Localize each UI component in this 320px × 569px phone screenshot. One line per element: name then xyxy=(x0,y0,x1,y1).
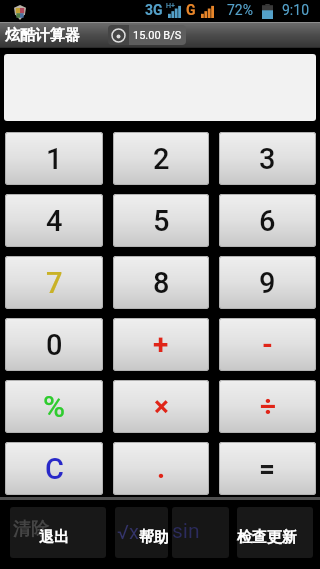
button[interactable]: 0 xyxy=(5,318,103,371)
button[interactable]: 检查更新 xyxy=(234,524,300,550)
staticText: × xyxy=(154,390,169,423)
staticText: 5 xyxy=(153,204,170,238)
staticText: 检查更新 xyxy=(237,528,297,547)
staticText: sin xyxy=(172,519,200,544)
staticText: . xyxy=(157,452,166,485)
staticText: 7 xyxy=(46,266,63,300)
button[interactable]: = xyxy=(219,442,316,495)
staticText: 清除 xyxy=(13,518,49,541)
staticText: 0 xyxy=(46,328,63,362)
button[interactable]: % xyxy=(5,380,103,433)
button[interactable]: + xyxy=(113,318,209,371)
staticText: 帮助 xyxy=(139,528,169,547)
button[interactable]: 1 xyxy=(5,132,103,185)
staticText: 3 xyxy=(259,142,276,176)
button[interactable]: × xyxy=(113,380,209,433)
button[interactable]: 帮助 xyxy=(134,524,174,550)
button[interactable]: C xyxy=(5,442,103,495)
staticText: 3G xyxy=(145,2,163,18)
staticText: G xyxy=(186,2,196,18)
button[interactable]: 7 xyxy=(5,256,103,309)
button[interactable]: - xyxy=(219,318,316,371)
button[interactable]: 4 xyxy=(5,194,103,247)
staticText: = xyxy=(259,452,276,485)
staticText: √x xyxy=(117,520,139,543)
button[interactable]: 5 xyxy=(113,194,209,247)
staticText: + xyxy=(153,328,169,361)
staticText: 退出 xyxy=(39,528,69,547)
staticText: 4 xyxy=(46,204,63,238)
button[interactable]: 9 xyxy=(219,256,316,309)
button[interactable]: ÷ xyxy=(219,380,316,433)
staticText: C xyxy=(45,452,64,486)
staticText: 72% xyxy=(227,2,253,18)
staticText: ÷ xyxy=(260,390,276,423)
staticText: 2 xyxy=(153,142,170,176)
staticText: 6 xyxy=(259,204,276,238)
staticText: % xyxy=(43,389,66,424)
button[interactable]: 6 xyxy=(219,194,316,247)
staticText: 8 xyxy=(153,266,170,300)
button[interactable]: 退出 xyxy=(30,524,78,550)
button[interactable]: . xyxy=(113,442,209,495)
staticText: 9 xyxy=(259,266,276,300)
staticText: 15.00 B/S xyxy=(133,29,182,42)
staticText: - xyxy=(262,328,273,361)
staticText: 炫酷计算器 xyxy=(5,26,80,45)
staticText: 9:10 xyxy=(282,2,309,18)
button[interactable]: 3 xyxy=(219,132,316,185)
button[interactable]: 2 xyxy=(113,132,209,185)
staticText: 1 xyxy=(46,142,63,176)
staticText: H+ xyxy=(166,2,175,10)
button[interactable]: 8 xyxy=(113,256,209,309)
